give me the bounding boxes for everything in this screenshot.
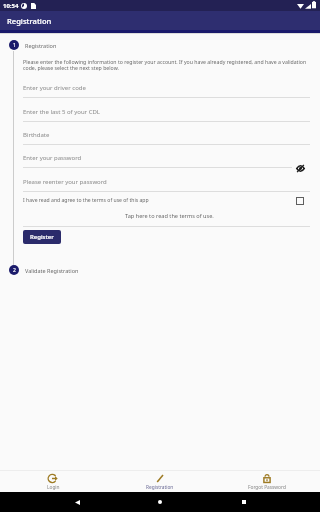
button[interactable]: Enter the last 5 of your CDL (23, 104, 310, 122)
staticText: Please reenter your password (23, 178, 107, 186)
staticText: Validate Registration (25, 267, 79, 274)
button[interactable]: Forgot Password (213, 471, 320, 492)
staticText: Enter your driver code (23, 84, 86, 92)
staticText: Please enter the following information t… (23, 58, 310, 72)
staticText: Enter your password (23, 154, 82, 162)
staticText: 10:54 (3, 2, 19, 10)
button[interactable]: Recent apps (237, 495, 251, 509)
staticText: Enter the last 5 of your CDL (23, 108, 100, 116)
button[interactable]: Enter your driver code (23, 80, 310, 98)
button[interactable]: Show password (296, 164, 305, 173)
button[interactable]: Login (0, 471, 106, 492)
button[interactable]: I have read and agree to the terms of us… (23, 194, 310, 207)
staticText: Tap here to read the terms of use. (125, 212, 214, 220)
button[interactable]: Register (23, 230, 61, 244)
button[interactable]: Back (70, 495, 84, 509)
button[interactable]: 1 (0, 38, 320, 52)
staticText: Registration (146, 484, 174, 491)
staticText: Birthdate (23, 131, 50, 139)
staticText: Registration (7, 16, 52, 26)
staticText: 2 (13, 267, 16, 274)
button[interactable]: Tap here to read the terms of use. (26, 212, 313, 220)
staticText: Forgot Password (248, 484, 286, 491)
staticText: Login (47, 484, 60, 491)
button[interactable]: Home (153, 495, 167, 509)
staticText: 1 (13, 42, 16, 49)
button[interactable]: Birthdate (23, 127, 310, 145)
button[interactable]: Please reenter your password (23, 174, 310, 192)
staticText: I have read and agree to the terms of us… (23, 197, 149, 204)
button[interactable]: Registration (106, 471, 213, 492)
button[interactable]: Enter your password (23, 150, 310, 168)
staticText: Registration (25, 42, 57, 49)
staticText: Register (30, 233, 54, 241)
button[interactable]: 2 (0, 263, 320, 277)
